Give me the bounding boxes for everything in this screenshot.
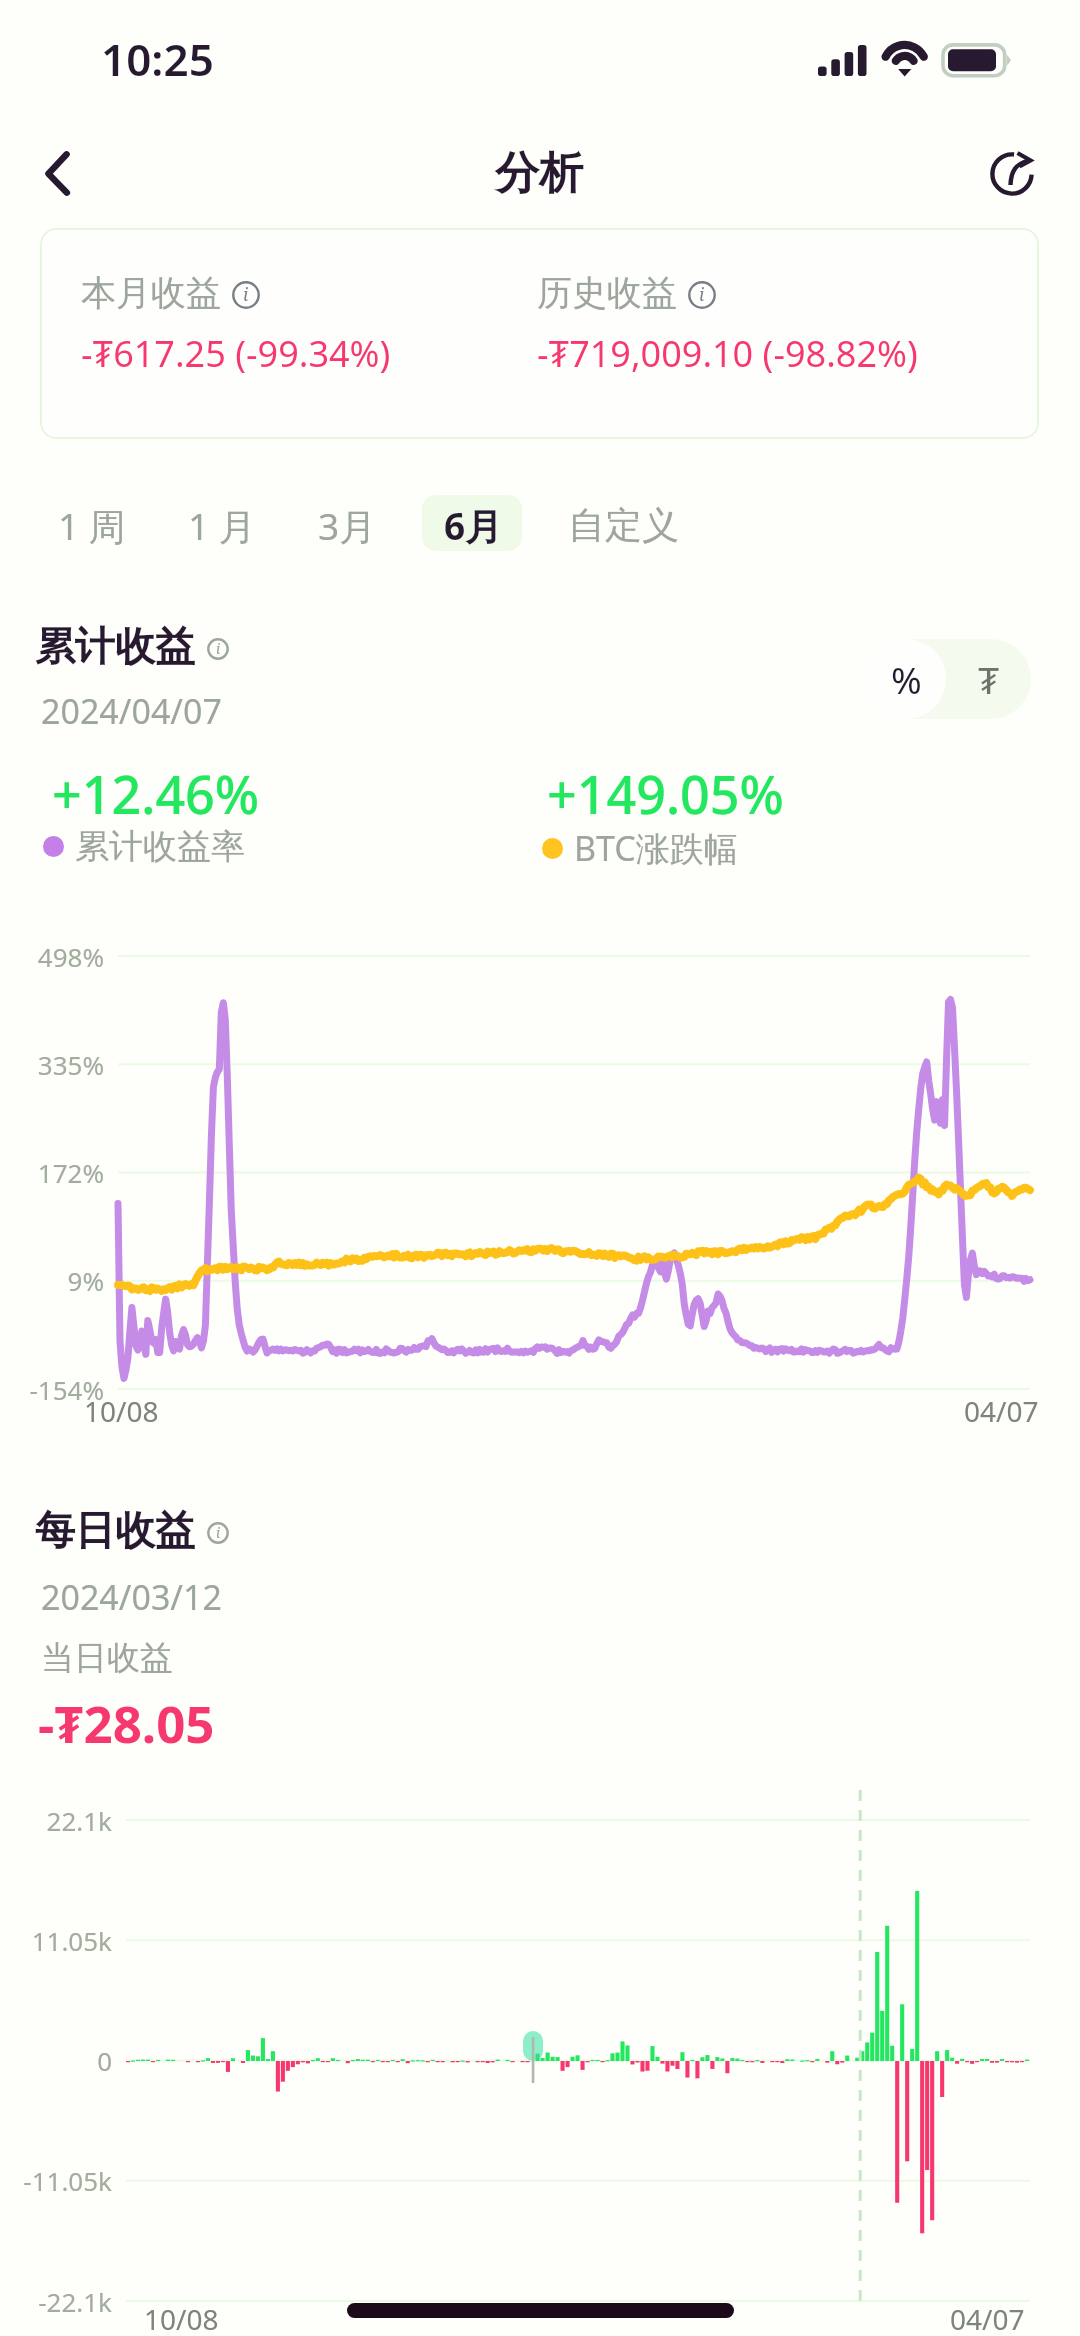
staticText: 历史收益 bbox=[537, 271, 677, 315]
staticText: 2024/03/12 bbox=[41, 1574, 222, 1620]
staticText: 498% bbox=[37, 939, 104, 974]
staticText: 每日收益 bbox=[35, 1505, 195, 1555]
staticText: -11.05k bbox=[23, 2163, 112, 2198]
staticText: 1 周 bbox=[58, 500, 126, 551]
staticText: 累计收益 bbox=[35, 621, 195, 671]
staticText: -₮28.05 bbox=[38, 1688, 215, 1757]
staticText: 10/08 bbox=[144, 2300, 219, 2336]
button[interactable]: Back bbox=[12, 136, 88, 212]
staticText: -22.1k bbox=[38, 2284, 112, 2319]
staticText: 0 bbox=[97, 2043, 112, 2078]
staticText: 累计收益率 bbox=[75, 825, 245, 868]
button[interactable]: 自定义 bbox=[550, 494, 697, 556]
staticText: 172% bbox=[37, 1155, 104, 1190]
staticText: 04/07 bbox=[950, 2300, 1025, 2336]
button[interactable]: 历史收益 bbox=[688, 281, 716, 309]
staticText: -₮719,009.10 (-98.82%) bbox=[537, 329, 918, 378]
staticText: i bbox=[243, 282, 249, 306]
button[interactable]: Show USDT amount bbox=[946, 639, 1031, 719]
button[interactable]: 本月收益 bbox=[232, 281, 260, 309]
button[interactable]: 6月 bbox=[426, 494, 521, 556]
staticText: i bbox=[216, 639, 221, 658]
staticText: 335% bbox=[37, 1047, 104, 1082]
button[interactable]: Show percent bbox=[866, 639, 946, 719]
staticText: 9% bbox=[67, 1263, 104, 1298]
staticText: 2024/04/07 bbox=[41, 688, 222, 734]
staticText: % bbox=[891, 654, 922, 704]
staticText: 本月收益 bbox=[81, 271, 221, 315]
staticText: 3月 bbox=[318, 500, 377, 551]
staticText: +149.05% bbox=[547, 758, 784, 829]
button[interactable]: About cumulative return bbox=[207, 638, 229, 660]
button[interactable]: About daily return bbox=[207, 1522, 229, 1544]
button[interactable]: 3月 bbox=[300, 494, 395, 556]
staticText: -₮617.25 (-99.34%) bbox=[81, 329, 391, 378]
staticText: i bbox=[216, 1523, 221, 1542]
staticText: +12.46% bbox=[52, 758, 260, 829]
button[interactable]: 1 周 bbox=[40, 494, 144, 556]
button[interactable]: Share bbox=[968, 136, 1044, 212]
staticText: 10/08 bbox=[84, 1392, 159, 1430]
button[interactable]: 1 月 bbox=[170, 494, 274, 556]
staticText: 22.1k bbox=[46, 1803, 112, 1838]
staticText: ₮ bbox=[978, 654, 1000, 704]
staticText: 1 月 bbox=[188, 500, 256, 551]
staticText: 11.05k bbox=[31, 1923, 112, 1958]
staticText: 10:25 bbox=[101, 29, 214, 89]
staticText: -154% bbox=[29, 1372, 104, 1407]
staticText: 当日收益 bbox=[41, 1637, 173, 1679]
staticText: 6月 bbox=[444, 500, 503, 551]
staticText: i bbox=[699, 282, 705, 306]
staticText: BTC涨跌幅 bbox=[574, 825, 738, 871]
staticText: 自定义 bbox=[568, 502, 679, 549]
staticText: 04/07 bbox=[964, 1392, 1039, 1430]
staticText: 分析 bbox=[495, 146, 583, 201]
